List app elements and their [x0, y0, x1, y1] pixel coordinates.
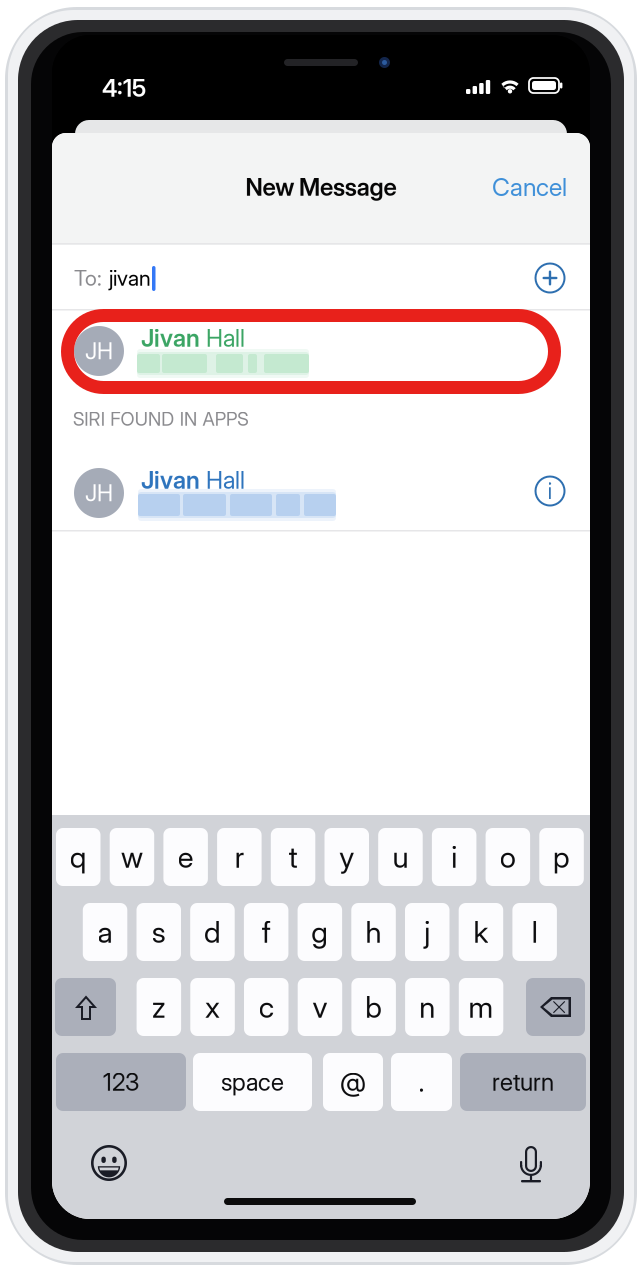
staticText: JH [85, 337, 113, 365]
staticText: d [204, 914, 221, 950]
button[interactable]: return [460, 1053, 586, 1111]
staticText: s [152, 914, 166, 950]
button[interactable]: x [190, 978, 235, 1036]
button[interactable]: Delete [526, 978, 585, 1036]
button[interactable]: g [298, 903, 342, 961]
staticText: n [419, 989, 435, 1025]
staticText: i [547, 477, 552, 505]
staticText: q [70, 839, 87, 875]
staticText: @ [340, 1066, 366, 1098]
button[interactable]: r [217, 828, 262, 886]
staticText: e [178, 839, 194, 875]
button[interactable]: n [405, 978, 450, 1036]
staticText: return [492, 1067, 554, 1096]
button[interactable]: @ [323, 1053, 383, 1111]
staticText: z [152, 989, 166, 1025]
button[interactable]: k [459, 903, 503, 961]
staticText: y [339, 839, 354, 875]
button[interactable]: JH [52, 311, 590, 393]
staticText: w [121, 839, 143, 875]
button[interactable]: space [193, 1053, 312, 1111]
button[interactable]: o [486, 828, 530, 886]
button[interactable]: Emoji [91, 1145, 127, 1181]
staticText: x [205, 989, 220, 1025]
button[interactable]: m [459, 978, 503, 1036]
staticText: Cancel [492, 172, 567, 202]
staticText: i [451, 839, 457, 875]
staticText: c [259, 989, 274, 1025]
staticText: l [532, 914, 538, 950]
staticText: o [500, 839, 516, 875]
button[interactable]: s [136, 903, 181, 961]
staticText: Jivan Hall [141, 466, 245, 494]
staticText: jivan [109, 265, 151, 291]
button[interactable]: z [137, 978, 181, 1036]
button[interactable]: l [512, 903, 557, 961]
button[interactable]: a [83, 903, 127, 961]
staticText: h [366, 914, 382, 950]
button[interactable]: t [271, 828, 315, 886]
staticText: SIRI FOUND IN APPS [73, 408, 248, 430]
staticText: JH [85, 479, 113, 507]
button[interactable]: c [244, 978, 288, 1036]
button[interactable]: w [110, 828, 154, 886]
button[interactable]: q [56, 828, 100, 886]
button[interactable]: h [351, 903, 396, 961]
staticText: g [311, 914, 328, 950]
button[interactable]: Shift [55, 978, 116, 1036]
staticText: r [235, 839, 244, 875]
staticText: j [424, 914, 430, 950]
staticText: p [553, 839, 570, 875]
staticText: k [473, 914, 488, 950]
staticText: f [262, 914, 271, 950]
button[interactable]: 123 [56, 1053, 186, 1111]
button[interactable]: . [391, 1053, 452, 1111]
button[interactable]: b [351, 978, 396, 1036]
button[interactable]: f [244, 903, 288, 961]
staticText: Jivan Hall [141, 324, 245, 352]
button[interactable]: v [298, 978, 342, 1036]
button[interactable]: Add contact [526, 254, 574, 302]
button[interactable]: j [405, 903, 449, 961]
button[interactable]: d [190, 903, 235, 961]
button[interactable]: u [378, 828, 423, 886]
staticText: 123 [103, 1067, 139, 1096]
staticText: To: [74, 265, 102, 291]
button[interactable]: i [432, 828, 476, 886]
button[interactable]: p [539, 828, 584, 886]
staticText: 4:15 [102, 73, 146, 102]
staticText: a [97, 914, 112, 950]
button[interactable]: e [163, 828, 208, 886]
button[interactable]: y [324, 828, 369, 886]
staticText: v [312, 989, 327, 1025]
staticText: u [392, 839, 408, 875]
staticText: b [365, 989, 382, 1025]
staticText: t [289, 839, 298, 875]
staticText: . [418, 1066, 424, 1098]
staticText: New Message [245, 172, 396, 201]
staticText: m [469, 989, 494, 1025]
button[interactable]: Dictate [518, 1142, 544, 1182]
button[interactable]: JH [52, 453, 590, 535]
button[interactable]: Cancel [447, 133, 567, 241]
staticText: space [221, 1067, 284, 1096]
